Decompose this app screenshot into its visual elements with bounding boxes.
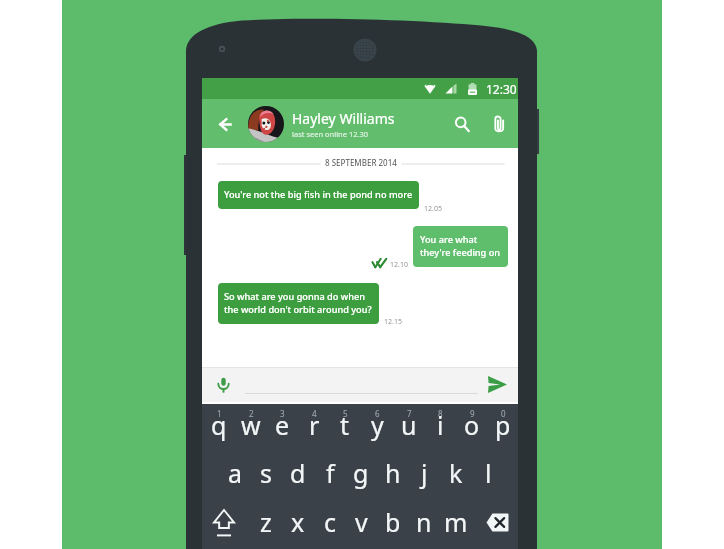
staticText: You're not the big fish in the pond no m… — [224, 188, 413, 201]
staticText: z — [260, 505, 272, 539]
staticText: c — [324, 505, 337, 539]
button[interactable]: 5 — [329, 406, 361, 454]
staticText: 8 SEPTEMBER 2014 — [325, 157, 397, 168]
button[interactable]: Voice input — [211, 373, 235, 397]
button[interactable]: 7 — [393, 406, 425, 454]
button[interactable]: Search — [446, 108, 478, 140]
button[interactable]: 3 — [266, 406, 298, 454]
staticText: a — [228, 456, 243, 490]
staticText: g — [353, 456, 369, 490]
button[interactable]: c — [314, 505, 346, 539]
staticText: f — [326, 456, 335, 490]
staticText: 0 — [501, 408, 506, 419]
staticText: Hayley Williams — [292, 109, 395, 128]
button[interactable]: Backspace — [486, 513, 509, 532]
staticText: k — [449, 456, 463, 490]
staticText: p — [495, 408, 511, 442]
button[interactable]: 1 — [203, 406, 235, 454]
button[interactable]: a — [219, 456, 251, 490]
button[interactable]: 9 — [456, 406, 488, 454]
button[interactable]: f — [314, 456, 346, 490]
button[interactable]: You're not the big fish in the pond no m… — [218, 181, 419, 209]
staticText: 2 — [249, 408, 254, 419]
staticText: 12:30 — [486, 81, 517, 97]
staticText: 12.05 — [424, 204, 442, 214]
staticText: m — [444, 505, 468, 539]
staticText: 8 — [438, 408, 443, 419]
staticText: d — [290, 456, 306, 490]
button[interactable]: 6 — [361, 406, 393, 454]
button[interactable]: You are what they're feeding on — [413, 226, 508, 267]
button[interactable]: x — [282, 505, 314, 539]
button[interactable]: Send — [482, 372, 512, 396]
staticText: l — [485, 456, 492, 490]
staticText: h — [385, 456, 401, 490]
staticText: r — [309, 408, 320, 442]
button[interactable]: g — [345, 456, 377, 490]
staticText: 3 — [280, 408, 285, 419]
button[interactable]: Back — [208, 107, 242, 141]
button[interactable]: z — [250, 505, 282, 539]
staticText: s — [260, 456, 272, 490]
button[interactable]: m — [440, 505, 472, 539]
button[interactable]: j — [408, 456, 440, 490]
button[interactable]: 0 — [487, 406, 519, 454]
button[interactable]: s — [250, 456, 282, 490]
staticText: b — [385, 505, 401, 539]
staticText: 12.15 — [384, 317, 402, 327]
button[interactable]: b — [377, 505, 409, 539]
button[interactable]: n — [408, 505, 440, 539]
staticText: So what are you gonna do when the world … — [224, 290, 372, 316]
staticText: You are what they're feeding on — [420, 233, 501, 259]
staticText: 4 — [312, 408, 317, 419]
staticText: t — [340, 408, 350, 442]
button[interactable]: d — [282, 456, 314, 490]
staticText: e — [275, 408, 290, 442]
staticText: v — [355, 505, 368, 539]
staticText: 7 — [407, 408, 412, 419]
staticText: w — [241, 408, 261, 442]
button[interactable]: k — [440, 456, 472, 490]
staticText: q — [211, 408, 227, 442]
staticText: 5 — [343, 408, 348, 419]
staticText: 9 — [470, 408, 475, 419]
staticText: 12.10 — [390, 260, 408, 270]
staticText: last seen online 12.30 — [292, 129, 369, 139]
button[interactable]: 2 — [235, 406, 267, 454]
staticText: 1 — [217, 408, 222, 419]
staticText: o — [464, 408, 480, 442]
button[interactable]: Attach file — [483, 108, 515, 140]
staticText: u — [401, 408, 417, 442]
button[interactable]: 4 — [298, 406, 330, 454]
button[interactable]: 8 — [424, 406, 456, 454]
button[interactable]: v — [345, 505, 377, 539]
staticText: i — [437, 408, 444, 442]
button[interactable]: Shift — [213, 509, 235, 539]
staticText: 6 — [375, 408, 380, 419]
staticText: x — [291, 505, 305, 539]
staticText: y — [371, 408, 384, 442]
button[interactable]: l — [472, 456, 504, 490]
staticText: n — [416, 505, 432, 539]
button[interactable]: So what are you gonna do when the world … — [218, 283, 379, 324]
staticText: j — [421, 456, 428, 490]
button[interactable]: h — [377, 456, 409, 490]
